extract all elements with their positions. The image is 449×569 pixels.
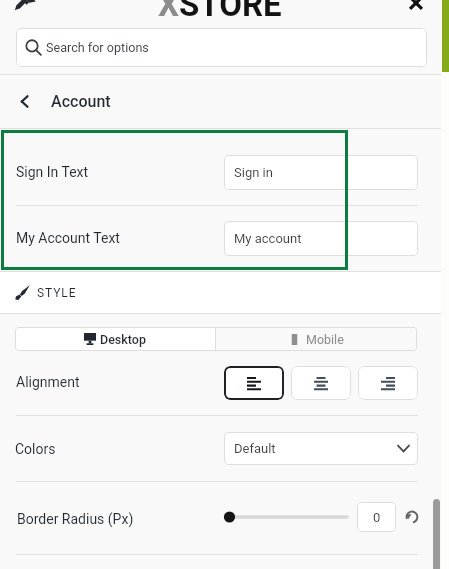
- button[interactable]: Close: [407, 0, 425, 12]
- button[interactable]: Mobile: [216, 327, 417, 351]
- staticText: My account: [234, 231, 302, 246]
- staticText: Sign In Text: [16, 164, 89, 180]
- staticText: My Account Text: [16, 230, 120, 246]
- button[interactable]: Sign In Text: [0, 139, 441, 205]
- staticText: Sign in: [234, 165, 273, 180]
- button[interactable]: Reset: [405, 510, 419, 524]
- button[interactable]: Align left: [224, 366, 284, 400]
- staticText: STYLE: [37, 286, 77, 300]
- staticText: Account: [51, 92, 111, 111]
- button[interactable]: Desktop: [15, 327, 215, 351]
- button[interactable]: Pin: [11, 0, 34, 14]
- button[interactable]: Default: [224, 432, 418, 465]
- staticText: STORE: [179, 0, 282, 24]
- staticText: Alignment: [16, 374, 80, 390]
- staticText: Border Radius (Px): [17, 511, 134, 527]
- staticText: Search for options: [46, 40, 149, 55]
- button[interactable]: Back: [0, 75, 441, 128]
- button[interactable]: Search for options: [16, 28, 427, 67]
- button[interactable]: Align right: [358, 366, 418, 400]
- button[interactable]: Align center: [291, 366, 351, 400]
- staticText: Default: [234, 441, 276, 456]
- button[interactable]: 0: [357, 502, 396, 532]
- staticText: Mobile: [306, 332, 344, 347]
- button[interactable]: Border radius slider: [222, 507, 347, 527]
- staticText: Colors: [15, 441, 56, 457]
- button[interactable]: My Account Text: [0, 205, 441, 271]
- staticText: X: [158, 0, 179, 24]
- button[interactable]: Sign in: [224, 155, 418, 190]
- staticText: Desktop: [100, 332, 146, 347]
- other: Back: [17, 94, 32, 109]
- staticText: 0: [373, 510, 381, 525]
- button[interactable]: My account: [224, 221, 418, 256]
